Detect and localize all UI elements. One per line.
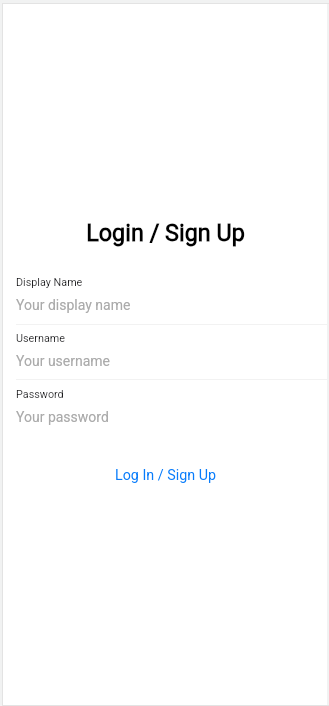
staticText: Log In / Sign Up xyxy=(115,467,216,484)
button[interactable]: Username xyxy=(3,326,327,379)
staticText: Your username xyxy=(16,353,111,369)
staticText: Your display name xyxy=(16,297,131,313)
staticText: Password xyxy=(16,388,64,401)
button[interactable]: Password xyxy=(3,382,327,435)
button[interactable]: Display Name xyxy=(3,270,327,323)
staticText: Login / Sign Up xyxy=(86,219,245,246)
button[interactable]: Log In / Sign Up xyxy=(105,461,226,490)
staticText: Username xyxy=(16,332,65,345)
staticText: Your password xyxy=(16,409,109,425)
staticText: Display Name xyxy=(16,276,83,289)
